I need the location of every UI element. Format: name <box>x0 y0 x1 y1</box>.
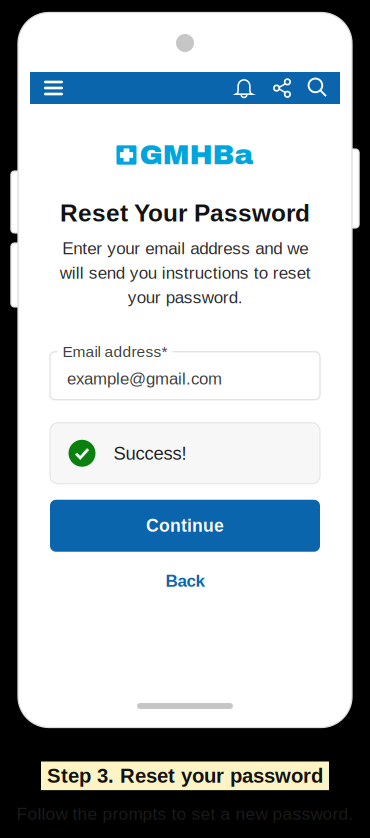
button[interactable]: Menu <box>39 72 68 104</box>
staticText: Follow the prompts to set a new password… <box>16 804 353 823</box>
staticText: Back <box>165 571 204 590</box>
button[interactable]: Back <box>130 569 240 593</box>
staticText: Step 3. Reset your password <box>47 764 323 787</box>
staticText: Continue <box>146 516 224 536</box>
button[interactable]: Notifications <box>230 72 258 104</box>
staticText: Reset Your Password <box>60 199 310 227</box>
staticText: example@gmail.com <box>67 369 222 388</box>
staticText: Enter your email address and we will sen… <box>59 239 310 307</box>
button[interactable]: Continue <box>50 500 320 552</box>
button[interactable]: Share <box>268 72 296 104</box>
staticText: Success! <box>113 443 186 464</box>
staticText: Email address* <box>62 343 167 360</box>
staticText: GMHBa <box>139 140 253 170</box>
button[interactable]: Search <box>304 72 332 104</box>
